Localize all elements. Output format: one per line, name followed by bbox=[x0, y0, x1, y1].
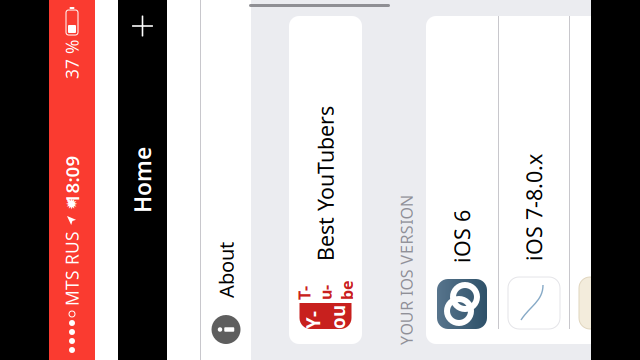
button[interactable]: iOS 6 bbox=[156, 286, 484, 358]
button[interactable]: About bbox=[140, 61, 500, 111]
staticText: About bbox=[202, 73, 258, 99]
button[interactable]: Add bbox=[456, 0, 492, 20]
staticText: Tube bbox=[200, 154, 220, 217]
staticText: Best YouTubers bbox=[239, 171, 394, 200]
button[interactable]: iOS 7-8.0.x bbox=[156, 359, 484, 360]
staticText: Home bbox=[287, 0, 353, 17]
staticText: YOUR IOS VERSION bbox=[155, 256, 305, 277]
staticText: iOS 6 bbox=[237, 308, 290, 336]
button[interactable]: You bbox=[156, 149, 484, 222]
